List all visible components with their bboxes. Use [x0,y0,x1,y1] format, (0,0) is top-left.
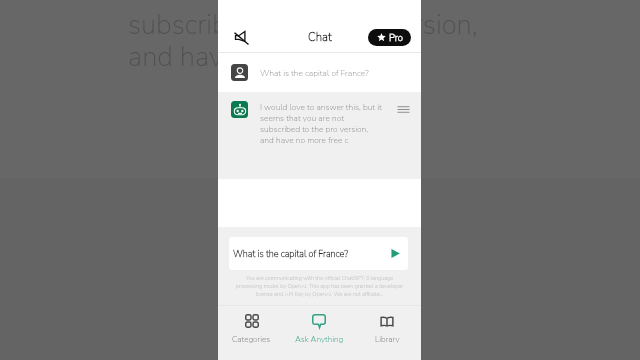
button[interactable]: Options [396,102,410,116]
staticText: Library [375,334,400,345]
button[interactable]: Pro [368,29,411,46]
staticText: Categories [232,334,271,345]
staticText: What is the capital of France? [233,248,391,260]
button[interactable]: I would love to answer this, but it seem… [218,92,421,179]
staticText: Ask Anything [295,334,344,345]
button[interactable]: Library [353,306,421,360]
staticText: Pro [389,31,403,44]
staticText: subscribed to the pro version, and have … [128,6,478,75]
button[interactable]: Mute notifications [229,25,253,49]
button[interactable]: What is the capital of France? [229,237,408,270]
staticText: I would love to answer this, but it seem… [260,101,396,146]
staticText: Chat [308,29,332,45]
staticText: You are communicating with the official … [235,274,404,298]
button[interactable]: Ask Anything [285,306,353,360]
button[interactable]: Send [391,249,400,258]
button[interactable]: Categories [218,306,285,360]
button[interactable]: What is the capital of France? [218,53,421,92]
staticText: What is the capital of France? [260,67,369,79]
